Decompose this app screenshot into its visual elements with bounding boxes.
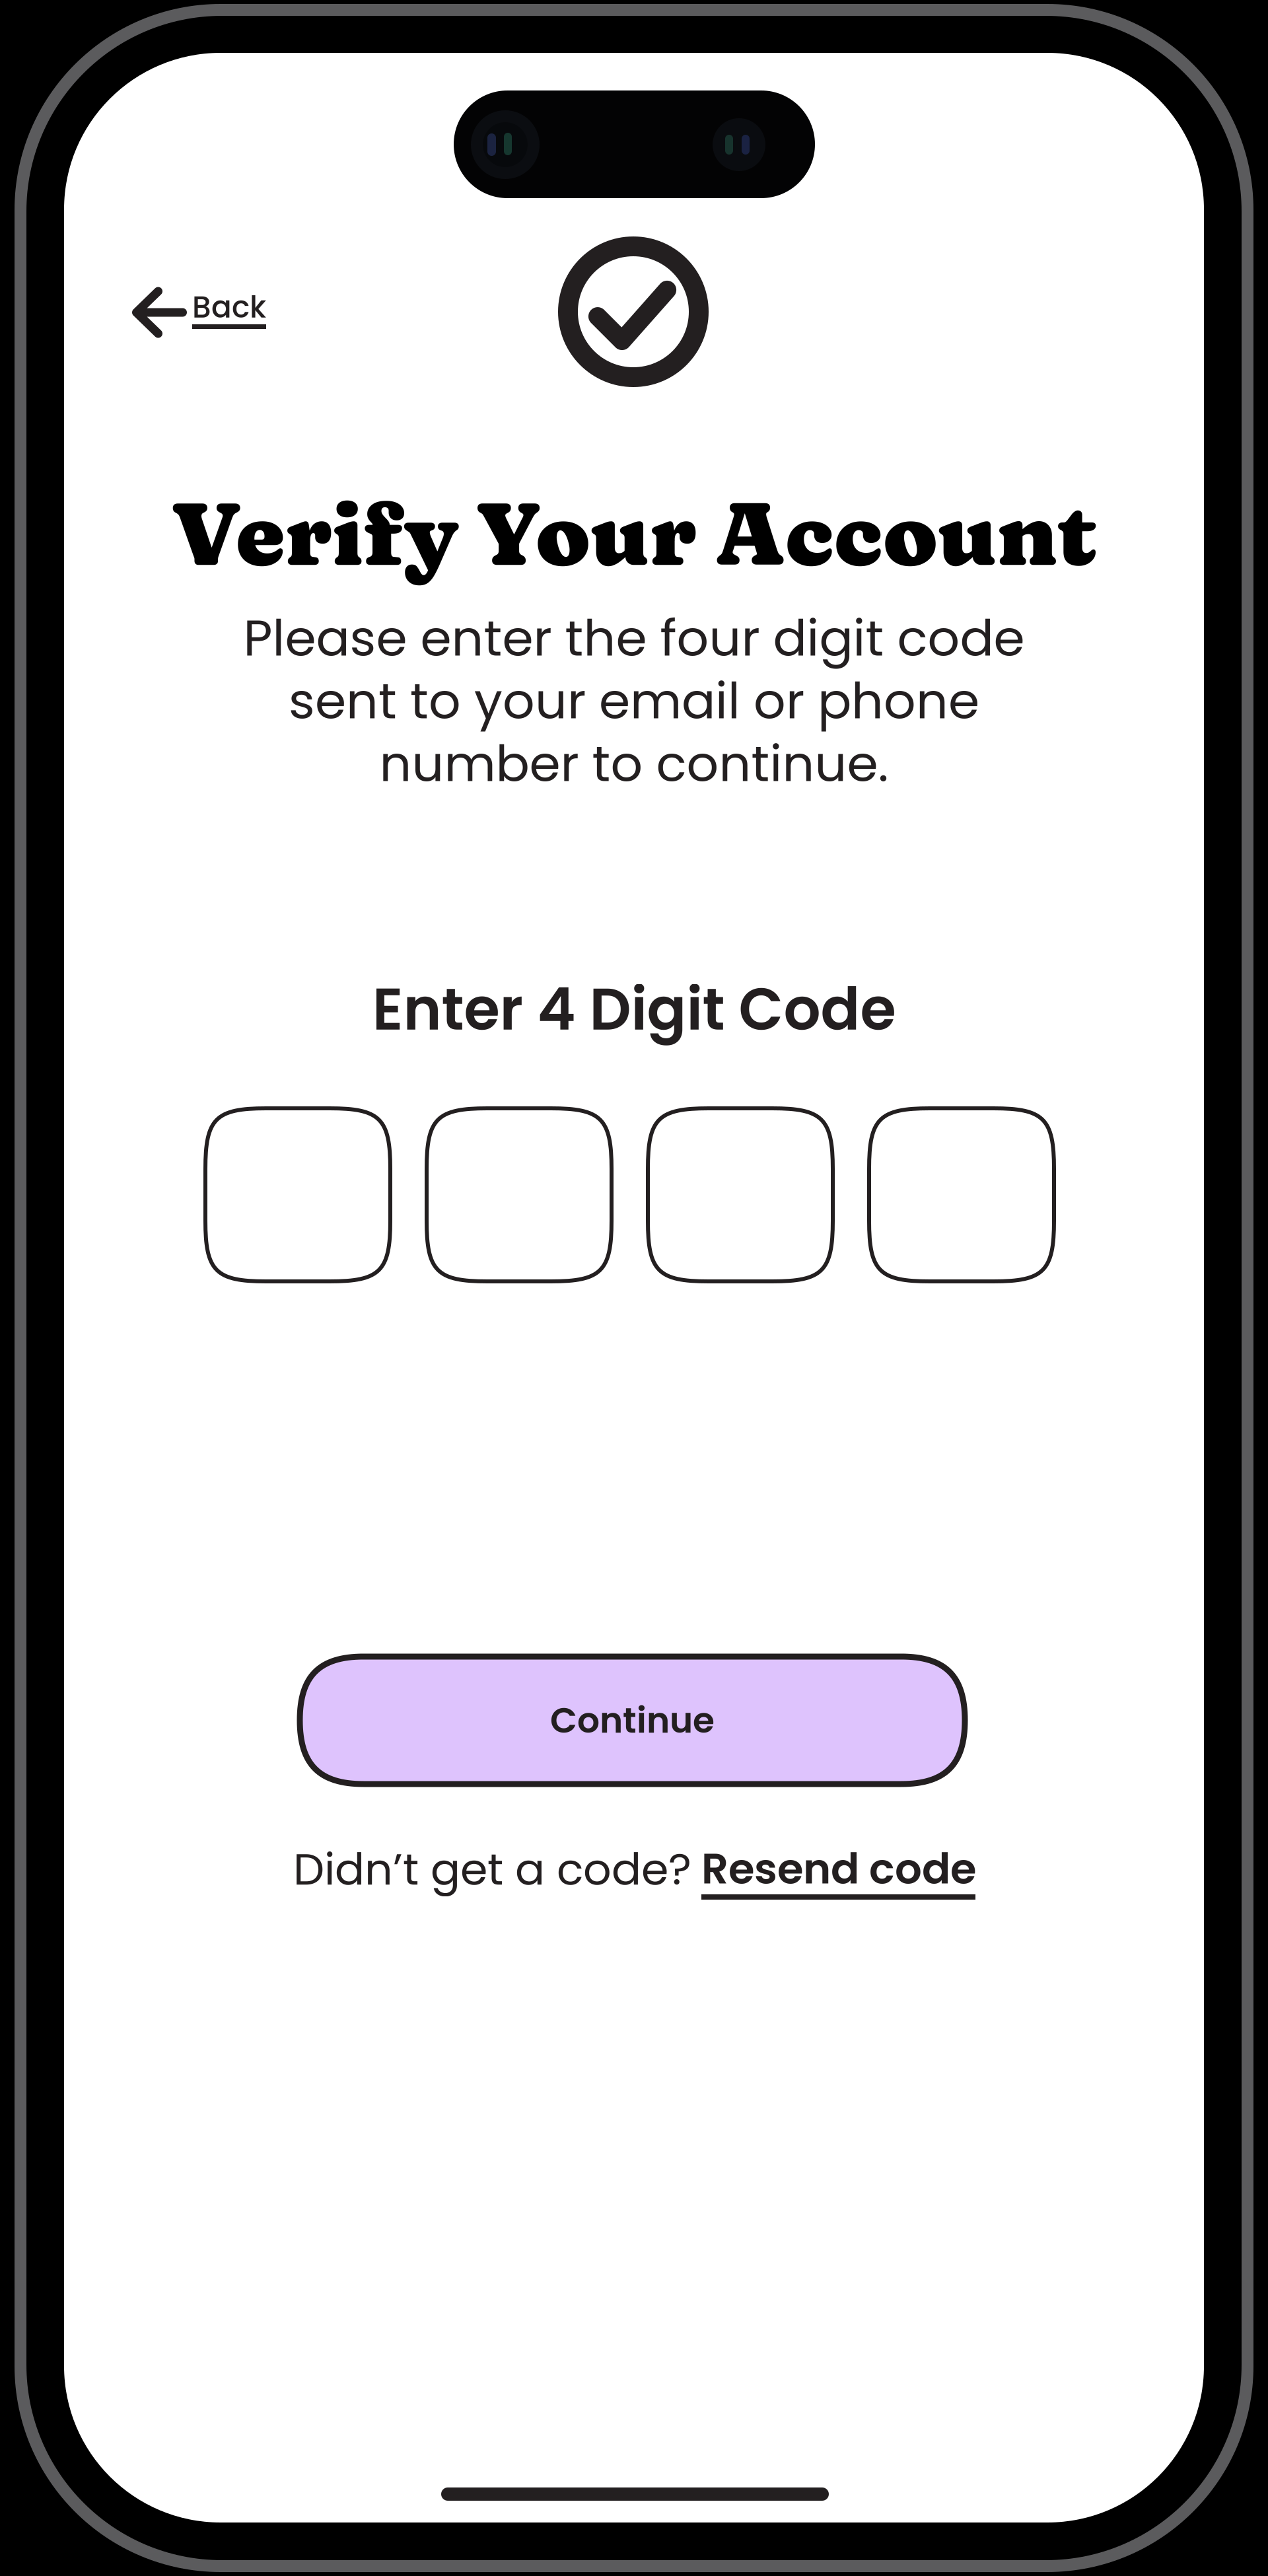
staticText: Verify Your Account: [171, 479, 1097, 587]
button[interactable]: Back: [125, 283, 282, 342]
staticText: Enter 4 Digit Code: [372, 969, 896, 1050]
button[interactable]: Continue: [300, 1657, 965, 1784]
staticText: sent to your email or phone: [289, 666, 979, 736]
staticText: Please enter the four digit code: [243, 603, 1025, 673]
staticText: Continue: [550, 1696, 715, 1745]
staticText: Resend code: [701, 1839, 976, 1898]
staticText: number to continue.: [379, 728, 889, 799]
button[interactable]: Resend code: [701, 1843, 992, 1900]
staticText: Back: [192, 286, 266, 328]
staticText: Didn’t get a code?: [293, 1838, 691, 1900]
